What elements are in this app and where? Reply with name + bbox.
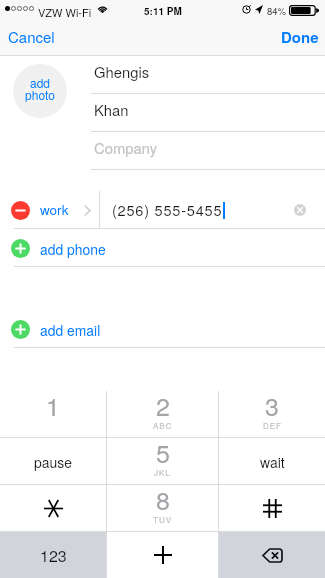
button[interactable]: Khan	[91, 94, 325, 132]
staticText: 1	[46, 387, 60, 423]
staticText: wait	[260, 452, 285, 472]
button[interactable]: Cancel	[0, 22, 65, 56]
staticText: JKL	[154, 467, 171, 478]
button[interactable]: 123	[0, 532, 106, 578]
staticText: DEF	[263, 420, 282, 431]
button[interactable]: pause	[0, 438, 106, 485]
button[interactable]: Done	[271, 22, 325, 56]
staticText: 84%	[267, 4, 287, 18]
staticText: pause	[34, 452, 73, 472]
button[interactable]: add email	[0, 310, 325, 348]
button[interactable]: Remove work phone, change label	[0, 191, 99, 229]
staticText: 8	[156, 481, 170, 517]
staticText: Ghengis	[94, 61, 150, 82]
button[interactable]: 8	[107, 485, 218, 532]
staticText: work	[40, 200, 69, 219]
staticText: add photo	[25, 74, 55, 103]
button[interactable]: GK	[13, 64, 67, 118]
button[interactable]: 2	[107, 391, 218, 438]
button[interactable]: Pound	[219, 485, 325, 532]
button[interactable]: Star	[0, 485, 106, 532]
button[interactable]: Ghengis	[91, 56, 325, 94]
staticText: add phone	[40, 239, 106, 259]
button[interactable]: (256) 555-5455	[100, 191, 325, 229]
staticText: Cancel	[8, 26, 55, 46]
staticText: 5	[156, 434, 170, 470]
button[interactable]: Delete	[219, 532, 325, 578]
staticText: add email	[40, 320, 101, 340]
button[interactable]: Company	[91, 132, 325, 170]
button[interactable]: wait	[219, 438, 325, 485]
button[interactable]: Clear text	[294, 204, 306, 216]
staticText: GK	[23, 75, 58, 109]
button[interactable]: Plus	[107, 532, 218, 578]
button[interactable]: 5	[107, 438, 218, 485]
button[interactable]: 3	[219, 391, 325, 438]
staticText: TUV	[153, 514, 172, 525]
button[interactable]: add phone	[0, 229, 325, 267]
staticText: 2	[156, 387, 170, 423]
staticText: (256) 555-5455	[112, 199, 223, 220]
staticText: 123	[40, 544, 67, 567]
staticText: Done	[281, 26, 319, 46]
staticText: ABC	[153, 420, 173, 431]
staticText: Company	[94, 137, 158, 158]
staticText: VZW Wi-Fi	[38, 4, 92, 20]
staticText: Khan	[94, 99, 129, 120]
staticText: 5:11 PM	[144, 4, 182, 18]
button[interactable]: 1	[0, 391, 106, 438]
staticText: 3	[265, 387, 279, 423]
